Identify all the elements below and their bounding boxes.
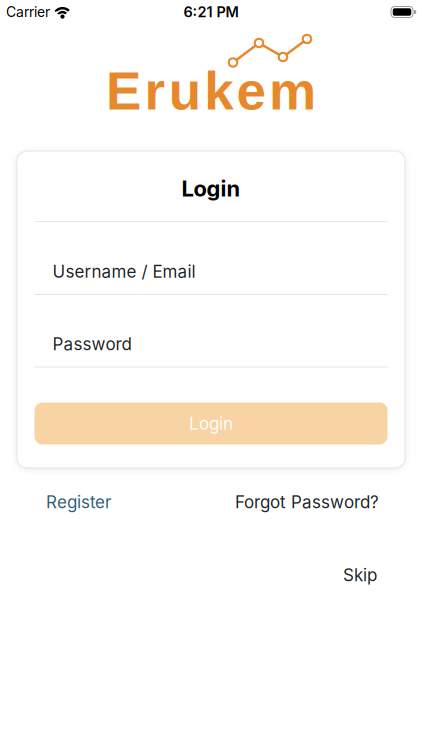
staticText: m <box>269 62 316 121</box>
staticText: Login <box>181 176 240 201</box>
staticText: r <box>144 62 165 121</box>
staticText: u <box>169 62 201 121</box>
staticText: Login <box>189 414 233 433</box>
button[interactable]: Register <box>46 492 111 512</box>
staticText: k <box>204 62 233 121</box>
staticText: Forgot Password? <box>235 492 379 512</box>
button[interactable]: Forgot Password? <box>235 492 379 512</box>
staticText: E <box>106 62 141 121</box>
button[interactable]: Password <box>34 333 387 367</box>
staticText: Username / Email <box>52 262 195 281</box>
staticText: Carrier <box>6 4 50 20</box>
button[interactable]: Skip <box>343 565 377 585</box>
button[interactable]: Login <box>34 402 387 444</box>
staticText: Skip <box>343 565 377 585</box>
staticText: Register <box>46 492 111 512</box>
button[interactable]: Username / Email <box>34 260 387 295</box>
staticText: Password <box>52 334 131 354</box>
staticText: 6:21 PM <box>183 4 238 20</box>
staticText: e <box>237 62 266 121</box>
